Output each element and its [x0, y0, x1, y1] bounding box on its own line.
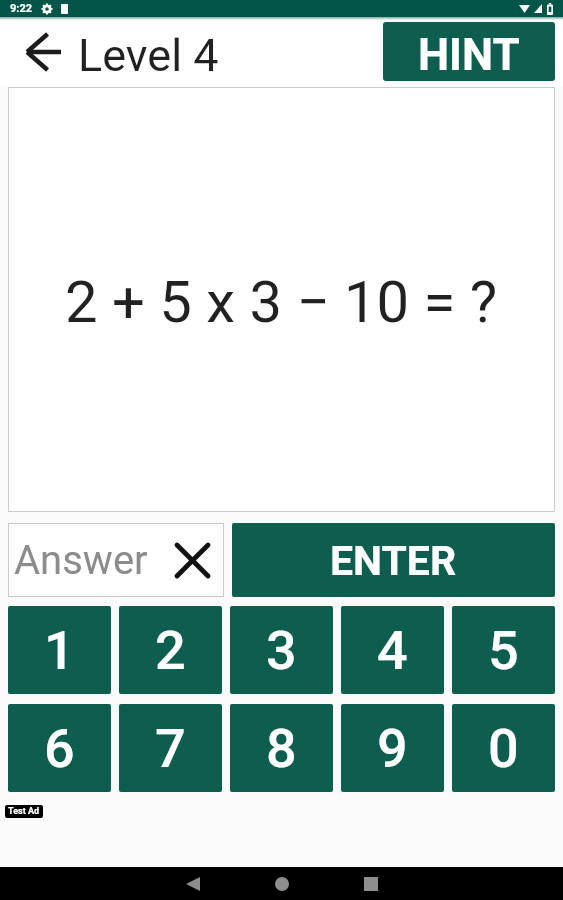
button[interactable]: 2	[119, 606, 222, 694]
staticText: Answer	[14, 537, 148, 584]
button[interactable]	[275, 877, 289, 891]
staticText: ENTER	[330, 537, 457, 585]
button[interactable]: 7	[119, 704, 222, 792]
staticText: HINT	[418, 29, 520, 81]
button[interactable]	[174, 542, 211, 579]
button[interactable]: 8	[230, 704, 333, 792]
button[interactable]: Answer	[8, 523, 224, 597]
staticText: 9:22	[10, 2, 33, 15]
staticText: 3	[266, 619, 297, 682]
button[interactable]: 4	[341, 606, 444, 694]
staticText: 6	[44, 717, 75, 780]
button[interactable]: 6	[8, 704, 111, 792]
staticText: 4	[377, 619, 408, 682]
staticText: 1	[44, 619, 75, 682]
staticText: 2 + 5 x 3 − 10 = ?	[65, 268, 498, 336]
staticText: 0	[488, 717, 519, 780]
staticText: 9	[377, 717, 408, 780]
staticText: 2	[155, 619, 186, 682]
button[interactable]: HINT	[383, 22, 555, 81]
staticText: 5	[488, 619, 519, 682]
staticText: 7	[155, 717, 186, 780]
button[interactable]: 0	[452, 704, 555, 792]
button[interactable]	[26, 34, 62, 70]
button[interactable]: 5	[452, 606, 555, 694]
button[interactable]: 9	[341, 704, 444, 792]
staticText: 8	[266, 717, 297, 780]
button[interactable]	[186, 877, 200, 891]
button[interactable]: 3	[230, 606, 333, 694]
button[interactable]: 1	[8, 606, 111, 694]
button[interactable]: ENTER	[232, 523, 555, 597]
staticText: Level 4	[78, 29, 219, 82]
staticText: Test Ad	[8, 806, 40, 817]
